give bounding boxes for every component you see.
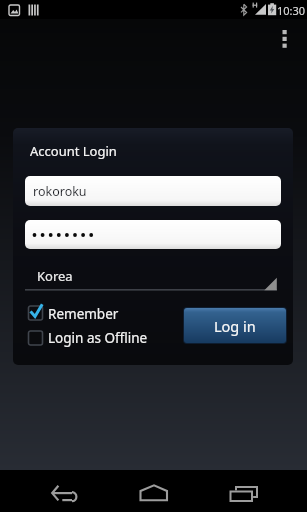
- staticText: rokoroku: [33, 183, 87, 200]
- button[interactable]: [25, 220, 281, 249]
- button[interactable]: Login as Offline: [25, 325, 165, 347]
- button[interactable]: [226, 474, 260, 508]
- staticText: Remember: [48, 305, 119, 323]
- staticText: 10:30: [277, 3, 306, 18]
- button[interactable]: [137, 474, 171, 508]
- button[interactable]: Korea: [25, 254, 277, 290]
- button[interactable]: Log in: [184, 308, 286, 343]
- button[interactable]: [44, 474, 82, 508]
- button[interactable]: [274, 23, 296, 55]
- staticText: Login as Offline: [48, 329, 148, 347]
- button[interactable]: rokoroku: [25, 176, 281, 206]
- button[interactable]: Remember: [25, 302, 135, 324]
- staticText: Account Login: [30, 142, 117, 160]
- staticText: Korea: [37, 267, 73, 285]
- staticText: Log in: [214, 316, 256, 336]
